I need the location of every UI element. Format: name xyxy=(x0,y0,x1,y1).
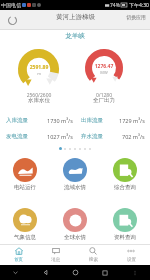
staticText: 下午4:30 xyxy=(129,2,149,9)
staticText: 1730 m³/s xyxy=(47,117,73,123)
staticText: 出库流量 xyxy=(81,117,103,123)
staticText: 资料查询 xyxy=(114,234,136,241)
button[interactable]: 全球水情 xyxy=(50,208,100,241)
staticText: 切换应用 xyxy=(126,14,146,20)
button[interactable]: 搜索 xyxy=(74,244,112,265)
button[interactable]: 设置 xyxy=(112,244,150,265)
staticText: 全球水情 xyxy=(64,234,86,241)
staticText: 弃水流量 xyxy=(81,133,103,139)
button[interactable]: Refresh xyxy=(6,14,19,27)
staticText: 首页 xyxy=(14,257,23,263)
staticText: 2560/2600 xyxy=(9,92,69,99)
staticText: 702 m³/s xyxy=(122,133,145,139)
staticText: 全厂出力 xyxy=(74,97,134,104)
staticText: 2591.89 xyxy=(15,64,63,71)
button[interactable]: 消息 xyxy=(37,244,74,265)
button[interactable]: 流域水情 xyxy=(50,158,100,191)
staticText: 水库水位 xyxy=(9,97,69,104)
button[interactable]: 切换应用 xyxy=(126,14,146,20)
staticText: 消息 xyxy=(51,257,60,263)
staticText: 74% xyxy=(110,2,120,9)
staticText: 龙羊峡 xyxy=(0,32,150,40)
button[interactable]: 资料查询 xyxy=(100,208,150,241)
button[interactable]: 首页 xyxy=(0,244,37,265)
staticText: 黄河上游梯级 xyxy=(56,13,95,21)
staticText: 1729 m³/s xyxy=(119,117,145,123)
staticText: 气象信息 xyxy=(14,234,36,241)
staticText: 中国电信 xyxy=(1,2,21,8)
staticText: 流域水情 xyxy=(64,184,86,191)
staticText: 1276.47 xyxy=(80,63,128,70)
button[interactable]: 综合查询 xyxy=(100,158,150,191)
staticText: MW xyxy=(80,70,128,75)
staticText: 搜索 xyxy=(89,257,98,263)
staticText: 0/1280 xyxy=(74,92,134,99)
button[interactable]: 电站运行 xyxy=(0,158,50,191)
staticText: 综合查询 xyxy=(114,184,136,191)
staticText: 发电流量 xyxy=(6,133,28,139)
staticText: 电站运行 xyxy=(14,184,36,191)
button[interactable]: 气象信息 xyxy=(0,208,50,241)
staticText: 入库流量 xyxy=(6,117,28,123)
staticText: 设置 xyxy=(127,257,136,263)
staticText: 1027 m³/s xyxy=(47,133,73,139)
staticText: m xyxy=(15,71,63,76)
